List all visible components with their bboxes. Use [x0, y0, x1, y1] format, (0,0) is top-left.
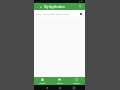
- staticText: Items: [57, 82, 63, 85]
- staticText: Enter the text to search here: [36, 12, 70, 15]
- button[interactable]: Back: [45, 86, 48, 89]
- button[interactable]: Home: [58, 86, 61, 89]
- button[interactable]: More options: [79, 12, 82, 15]
- button[interactable]: Items: [51, 77, 68, 85]
- button[interactable]: Home: [34, 77, 51, 85]
- button[interactable]: Search: [79, 5, 82, 8]
- staticText: Home: [39, 82, 46, 85]
- button[interactable]: Profile: [68, 77, 85, 85]
- staticText: Profile: [73, 82, 80, 85]
- button[interactable]: Recents: [72, 86, 75, 89]
- staticText: ▲ ▮: [79, 0, 83, 3]
- staticText: My Application: [44, 5, 65, 9]
- button[interactable]: Menu: [39, 5, 42, 8]
- staticText: 9:41: [36, 0, 41, 3]
